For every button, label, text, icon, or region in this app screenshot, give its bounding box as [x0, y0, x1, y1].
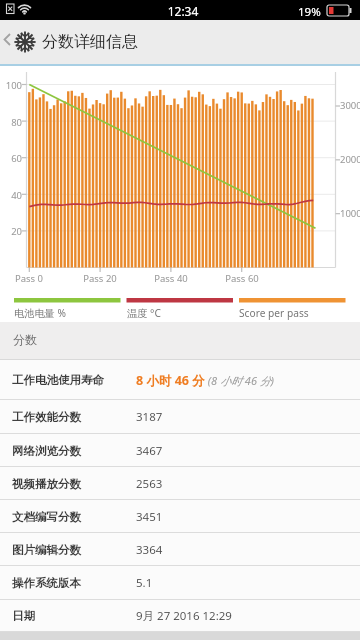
staticText: 2563 — [136, 476, 163, 492]
button[interactable]: 工作效能分数 — [0, 400, 360, 434]
staticText: 文档编写分数 — [12, 510, 81, 524]
button[interactable]: 日期 — [0, 600, 360, 632]
staticText: 温度 °C — [127, 306, 161, 320]
staticText: 操作系统版本 — [12, 576, 81, 590]
staticText: 60 — [0, 152, 22, 165]
button[interactable]: 图片编辑分数 — [0, 533, 360, 566]
staticText: 5.1 — [136, 575, 153, 591]
button[interactable]: 网络浏览分数 — [0, 434, 360, 467]
staticText: 8 小时 46 分 — [136, 372, 205, 389]
button[interactable]: 视频播放分数 — [0, 467, 360, 500]
staticText: 分数详细信息 — [42, 32, 138, 52]
staticText: 网络浏览分数 — [12, 444, 81, 458]
staticText: 图片编辑分数 — [12, 543, 81, 557]
staticText: 3187 — [136, 409, 163, 425]
staticText: 3364 — [136, 542, 163, 558]
staticText: 工作电池使用寿命 — [12, 373, 104, 387]
staticText: 分数 — [13, 332, 37, 347]
button[interactable] — [0, 20, 14, 64]
staticText: 40 — [0, 189, 22, 202]
staticText: 9月 27 2016 12:29 — [136, 608, 232, 624]
staticText: Pass 0 — [0, 272, 69, 285]
button[interactable]: 文档编写分数 — [0, 500, 360, 533]
staticText: 3451 — [136, 509, 163, 525]
staticText: 100 — [0, 79, 22, 92]
button[interactable]: 操作系统版本 — [0, 566, 360, 600]
staticText: 3467 — [136, 443, 163, 459]
staticText: (8 小时 46 分) — [205, 373, 275, 388]
staticText: 3000 — [340, 99, 360, 112]
staticText: 电池电量 % — [14, 306, 66, 320]
staticText: 1000 — [340, 207, 360, 220]
staticText: 视频播放分数 — [12, 477, 81, 491]
staticText: Pass 20 — [60, 272, 140, 285]
staticText: Pass 60 — [202, 272, 282, 285]
staticText: 20 — [0, 225, 22, 238]
staticText: 日期 — [12, 609, 35, 623]
button[interactable]: 工作电池使用寿命 — [0, 360, 360, 400]
staticText: Score per pass — [239, 306, 309, 320]
staticText: Pass 40 — [131, 272, 211, 285]
staticText: 80 — [0, 116, 22, 129]
staticText: 工作效能分数 — [12, 410, 81, 424]
staticText: 12:34 — [143, 3, 223, 19]
staticText: 2000 — [340, 153, 360, 166]
staticText: 19% — [298, 4, 321, 20]
